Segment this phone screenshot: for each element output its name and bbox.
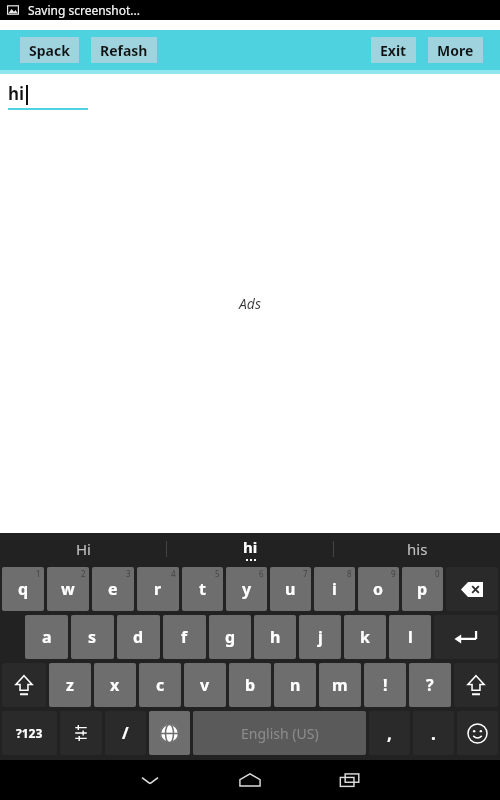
staticText: t	[199, 578, 206, 600]
button[interactable]: r	[137, 567, 179, 611]
staticText: m	[332, 674, 348, 696]
button[interactable]: Spack	[20, 37, 79, 63]
staticText: h	[270, 626, 281, 648]
staticText: f	[181, 626, 188, 648]
button[interactable]: d	[117, 615, 160, 659]
staticText: ?123	[16, 725, 43, 741]
staticText: More	[437, 41, 474, 60]
button[interactable]: j	[299, 615, 341, 659]
button[interactable]: b	[229, 663, 271, 707]
button[interactable]: .	[413, 711, 454, 755]
staticText: Exit	[380, 41, 407, 60]
button[interactable]: Keyboard settings	[60, 711, 102, 755]
button[interactable]: Recent apps	[305, 760, 395, 800]
staticText: l	[408, 626, 413, 648]
staticText: i	[332, 578, 337, 600]
button[interactable]: n	[274, 663, 316, 707]
button[interactable]: m	[319, 663, 361, 707]
staticText: Saving screenshot...	[28, 2, 141, 18]
button[interactable]: Change language	[149, 711, 190, 755]
staticText: 9	[391, 568, 396, 579]
button[interactable]: p	[402, 567, 443, 611]
button[interactable]: More	[428, 37, 483, 63]
button[interactable]: y	[226, 567, 267, 611]
staticText: hi	[243, 537, 258, 557]
button[interactable]: ?123	[2, 711, 57, 755]
button[interactable]: u	[270, 567, 311, 611]
button[interactable]: a	[25, 615, 68, 659]
staticText: o	[373, 578, 384, 600]
staticText: v	[200, 674, 210, 696]
button[interactable]: Shift	[2, 663, 46, 707]
staticText: Hi	[76, 539, 91, 559]
staticText: x	[110, 674, 120, 696]
button[interactable]: k	[344, 615, 386, 659]
button[interactable]: l	[389, 615, 431, 659]
button[interactable]: !	[364, 663, 406, 707]
staticText: b	[245, 674, 256, 696]
staticText: d	[133, 626, 144, 648]
staticText: g	[225, 626, 236, 648]
button[interactable]: Hide keyboard	[105, 760, 195, 800]
staticText: 2	[81, 568, 86, 579]
button[interactable]: Refash	[91, 37, 157, 63]
button[interactable]: Emoji	[457, 711, 498, 755]
staticText: ,	[387, 722, 392, 745]
button[interactable]: Home	[205, 760, 295, 800]
button[interactable]: e	[92, 567, 134, 611]
staticText: j	[318, 626, 323, 648]
staticText: c	[156, 674, 165, 696]
staticText: s	[88, 626, 97, 648]
staticText: hi	[8, 82, 25, 105]
staticText: Ads	[239, 294, 262, 313]
button[interactable]: z	[49, 663, 91, 707]
button[interactable]: Backspace	[446, 567, 498, 611]
button[interactable]: w	[47, 567, 89, 611]
staticText: k	[360, 626, 370, 648]
button[interactable]: i	[314, 567, 355, 611]
button[interactable]: Exit	[371, 37, 416, 63]
button[interactable]: Shift	[454, 663, 498, 707]
staticText: 3	[126, 568, 131, 579]
staticText: his	[407, 539, 428, 559]
button[interactable]: hi	[167, 533, 333, 565]
staticText: 1	[36, 568, 41, 579]
button[interactable]: s	[71, 615, 114, 659]
staticText: English (US)	[241, 724, 319, 743]
button[interactable]: ,	[369, 711, 410, 755]
staticText: /	[122, 722, 129, 744]
staticText: 7	[303, 568, 308, 579]
staticText: 6	[259, 568, 264, 579]
button[interactable]: g	[209, 615, 251, 659]
staticText: q	[18, 578, 29, 600]
button[interactable]: ?	[409, 663, 451, 707]
staticText: 4	[171, 568, 176, 579]
staticText: .	[431, 722, 436, 745]
staticText: w	[61, 578, 75, 600]
staticText: y	[242, 578, 252, 600]
staticText: Refash	[100, 41, 148, 60]
button[interactable]: c	[139, 663, 181, 707]
button[interactable]: q	[2, 567, 44, 611]
staticText: 0	[435, 568, 440, 579]
staticText: r	[154, 578, 162, 600]
staticText: a	[42, 626, 52, 648]
button[interactable]: /	[105, 711, 146, 755]
button[interactable]: v	[184, 663, 226, 707]
staticText: p	[417, 578, 428, 600]
button[interactable]: x	[94, 663, 136, 707]
staticText: Spack	[29, 41, 70, 60]
staticText: n	[290, 674, 301, 696]
button[interactable]: Hi	[0, 533, 166, 565]
staticText: e	[108, 578, 118, 600]
button[interactable]: t	[182, 567, 223, 611]
staticText: !	[383, 674, 388, 696]
button[interactable]: Enter	[434, 615, 498, 659]
button[interactable]: h	[254, 615, 296, 659]
staticText: 8	[347, 568, 352, 579]
button[interactable]: o	[358, 567, 399, 611]
button[interactable]: English (US)	[193, 711, 366, 755]
button[interactable]: f	[163, 615, 206, 659]
staticText: ?	[426, 674, 434, 696]
button[interactable]: his	[334, 533, 500, 565]
